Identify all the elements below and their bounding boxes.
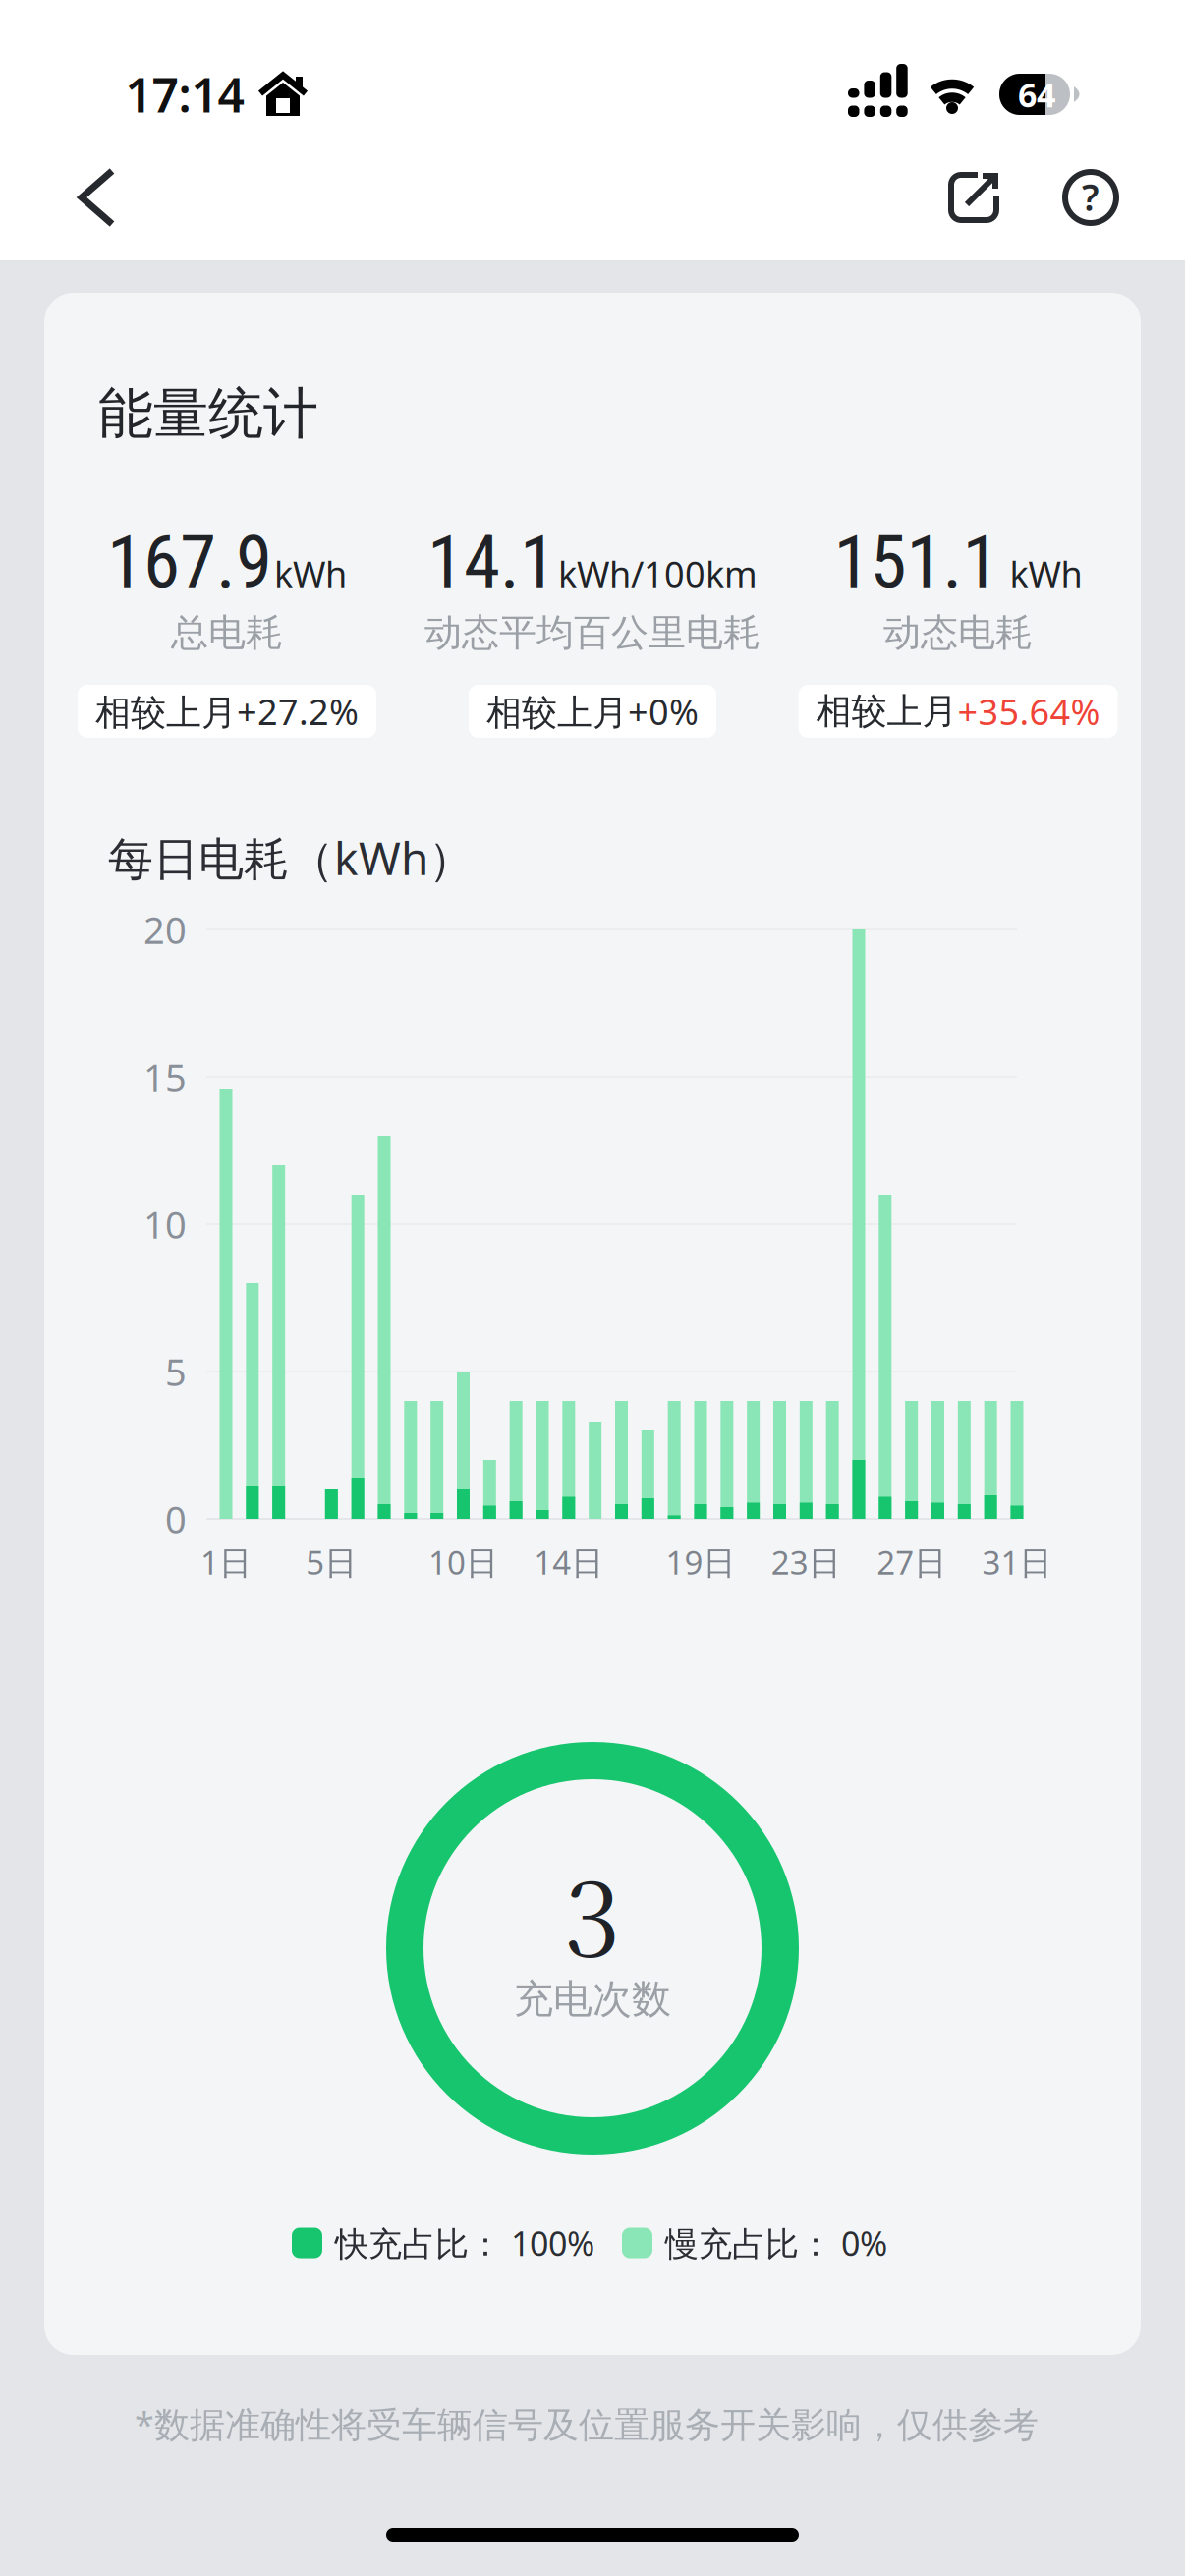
staticText: kWh	[274, 549, 347, 598]
staticText: 1日	[200, 1540, 252, 1584]
staticText: 14日	[534, 1540, 604, 1584]
staticText: 动态电耗	[883, 609, 1033, 656]
staticText: 10日	[428, 1540, 498, 1584]
staticText: 0	[165, 1493, 187, 1544]
staticText: kWh	[1001, 549, 1082, 598]
staticText: 5	[165, 1346, 187, 1397]
staticText: 20	[143, 904, 187, 955]
staticText: 31日	[982, 1540, 1052, 1584]
button[interactable]: ?	[1062, 169, 1119, 226]
staticText: kWh/100km	[558, 549, 758, 598]
staticText: 19日	[666, 1540, 735, 1584]
staticText: 167.9	[107, 519, 272, 605]
staticText: 15	[143, 1051, 187, 1102]
staticText: 64	[1018, 72, 1055, 117]
staticText: *数据准确性将受车辆信号及位置服务开关影响，仅供参考	[135, 2400, 1039, 2448]
staticText: 相较上月+27.2%	[95, 687, 359, 735]
staticText: 每日电耗（kWh）	[108, 827, 474, 889]
staticText: 相较上月	[816, 689, 958, 734]
staticText: 总电耗	[171, 609, 283, 656]
staticText: 能量统计	[98, 379, 318, 448]
staticText: 快充占比： 100%	[335, 2220, 594, 2266]
staticText: 5日	[306, 1540, 357, 1584]
button[interactable]	[948, 172, 999, 223]
staticText: 慢充占比： 0%	[665, 2220, 887, 2266]
staticText: 23日	[771, 1540, 841, 1584]
button[interactable]	[77, 169, 118, 226]
staticText: 动态平均百公里电耗	[424, 609, 761, 656]
staticText: 充电次数	[514, 1975, 671, 2024]
staticText: 17:14	[125, 62, 244, 126]
staticText: 14.1	[427, 519, 556, 605]
staticText: 3	[564, 1838, 621, 1985]
staticText: +35.64%	[958, 687, 1100, 735]
staticText: 10	[143, 1199, 187, 1250]
staticText: 相较上月+0%	[486, 687, 699, 735]
staticText: 27日	[877, 1540, 946, 1584]
staticText: 151.1	[834, 519, 999, 605]
staticText: ?	[1082, 171, 1100, 222]
